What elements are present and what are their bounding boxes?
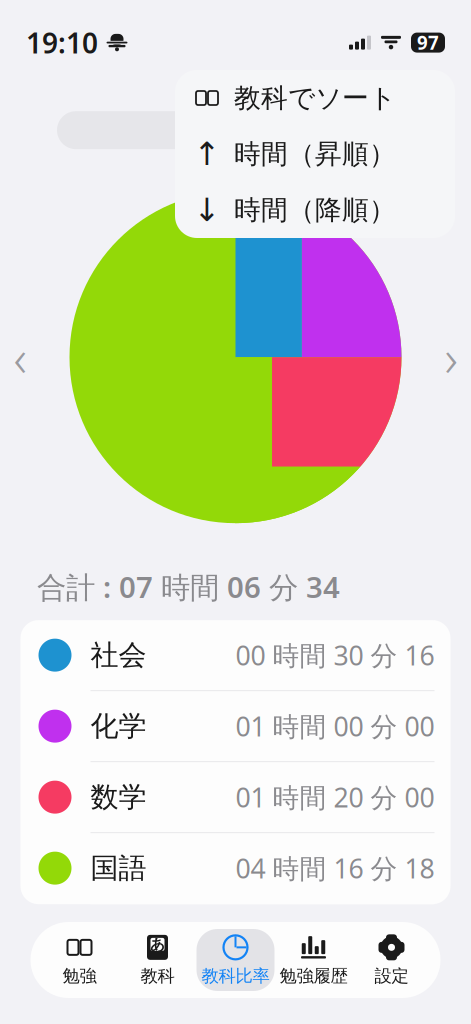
staticText: 04 時間 16 分 18 xyxy=(235,850,434,886)
staticText: 01 時間 00 分 00 xyxy=(235,708,434,744)
button[interactable]: Previous xyxy=(2,327,38,387)
staticText: 合計 : 07 時間 06 分 34 xyxy=(37,567,340,606)
button[interactable]: 設定 xyxy=(352,929,430,991)
button[interactable]: 教科でソート xyxy=(175,70,455,126)
staticText: 教科比率 xyxy=(201,965,269,987)
button[interactable]: 化学 xyxy=(20,691,450,762)
button[interactable]: ↑ xyxy=(175,126,455,182)
button[interactable]: 教科比率 xyxy=(196,929,274,991)
staticText: › xyxy=(444,323,457,391)
staticText: 00 時間 30 分 16 xyxy=(235,637,434,673)
staticText: ‹ xyxy=(13,323,26,391)
staticText: 時間（降順） xyxy=(234,194,396,226)
button[interactable]: Next xyxy=(433,327,469,387)
staticText: あ xyxy=(150,935,165,953)
staticText: 97 xyxy=(417,30,439,55)
button[interactable]: 勉強履歴 xyxy=(274,929,352,991)
staticText: 勉強 xyxy=(62,965,96,987)
staticText: 教科でソート xyxy=(234,82,396,114)
button[interactable]: 勉強 xyxy=(40,929,118,991)
staticText: ↑ xyxy=(193,136,220,172)
staticText: 19:10 xyxy=(26,24,98,61)
staticText: 01 時間 20 分 00 xyxy=(235,779,434,815)
staticText: 勉強履歴 xyxy=(279,965,347,987)
button[interactable]: 国語 xyxy=(20,833,450,904)
button[interactable]: あ xyxy=(118,929,196,991)
staticText: ↓ xyxy=(193,192,220,228)
button[interactable]: ↓ xyxy=(175,182,455,238)
staticText: 設定 xyxy=(374,965,408,987)
button[interactable]: 社会 xyxy=(20,620,450,691)
button[interactable]: 数学 xyxy=(20,762,450,833)
staticText: 国語 xyxy=(90,851,146,885)
staticText: 時間（昇順） xyxy=(234,138,396,170)
staticText: 数学 xyxy=(90,780,146,814)
staticText: 教科 xyxy=(140,965,174,987)
staticText: 社会 xyxy=(90,638,146,672)
staticText: 化学 xyxy=(90,709,146,743)
button[interactable]: Sort xyxy=(57,111,222,149)
